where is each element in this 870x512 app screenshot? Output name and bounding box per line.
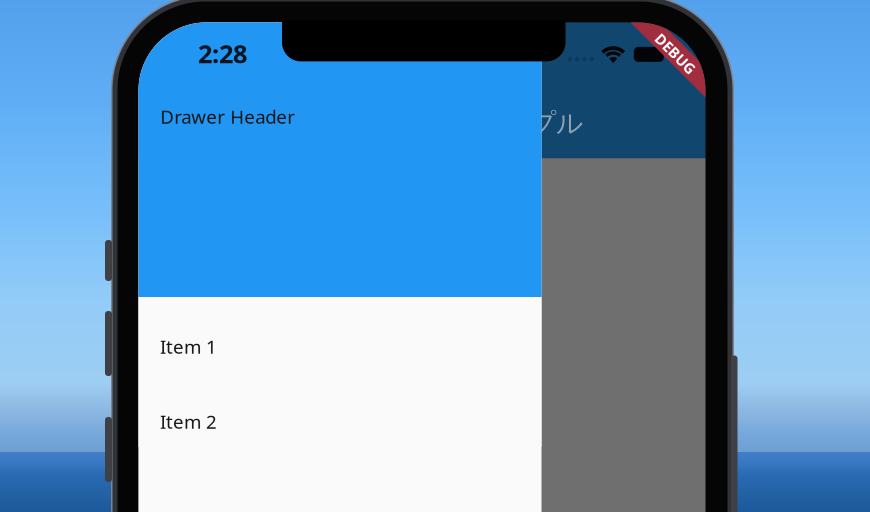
button[interactable]: Item 2 — [138, 372, 541, 447]
staticText: ドロワーのサンプル — [340, 107, 583, 140]
staticText: Drawer Header — [160, 104, 295, 129]
button[interactable]: Close drawer — [138, 22, 705, 512]
staticText: Item 2 — [160, 409, 217, 434]
staticText: 2:28 — [198, 36, 247, 70]
staticText: DEBUG — [650, 44, 701, 63]
button[interactable]: Item 1 — [138, 297, 541, 372]
staticText: Item 1 — [160, 334, 217, 359]
